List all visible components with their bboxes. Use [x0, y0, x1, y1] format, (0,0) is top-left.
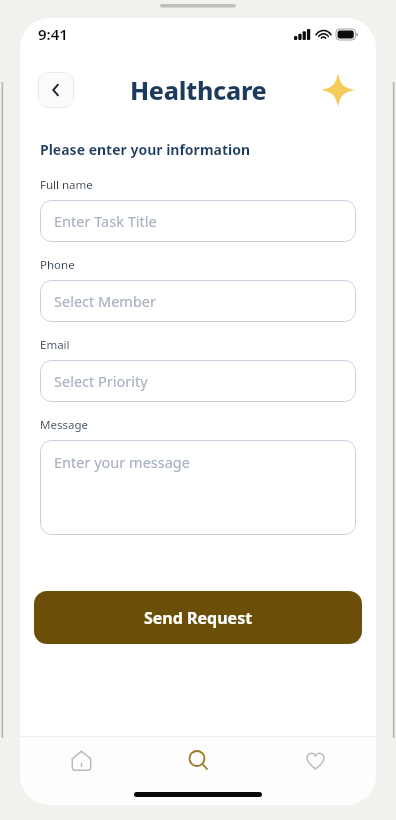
staticText: Enter Task Title	[54, 211, 157, 231]
staticText: Full name	[40, 177, 93, 193]
staticText: Phone	[40, 257, 75, 273]
button[interactable]: Back	[38, 72, 74, 108]
button[interactable]: Send Request	[34, 591, 362, 644]
staticText: 9:41	[38, 24, 68, 44]
button[interactable]: Select Member	[40, 280, 356, 322]
staticText: Send Request	[144, 607, 253, 629]
staticText: Please enter your information	[40, 140, 251, 159]
button[interactable]: Select Priority	[40, 360, 356, 402]
staticText: Select Member	[54, 291, 156, 311]
button[interactable]: Search	[167, 737, 229, 783]
staticText: Message	[40, 417, 88, 433]
button[interactable]: Enter Task Title	[40, 200, 356, 242]
button[interactable]: Favorites	[284, 737, 346, 783]
staticText: Email	[40, 337, 70, 353]
button[interactable]: Assistant	[318, 70, 358, 110]
button[interactable]: Enter your message	[40, 440, 356, 535]
button[interactable]: Home	[50, 737, 112, 783]
staticText: Enter your message	[54, 452, 190, 472]
staticText: Healthcare	[130, 73, 267, 107]
staticText: Select Priority	[54, 371, 148, 391]
